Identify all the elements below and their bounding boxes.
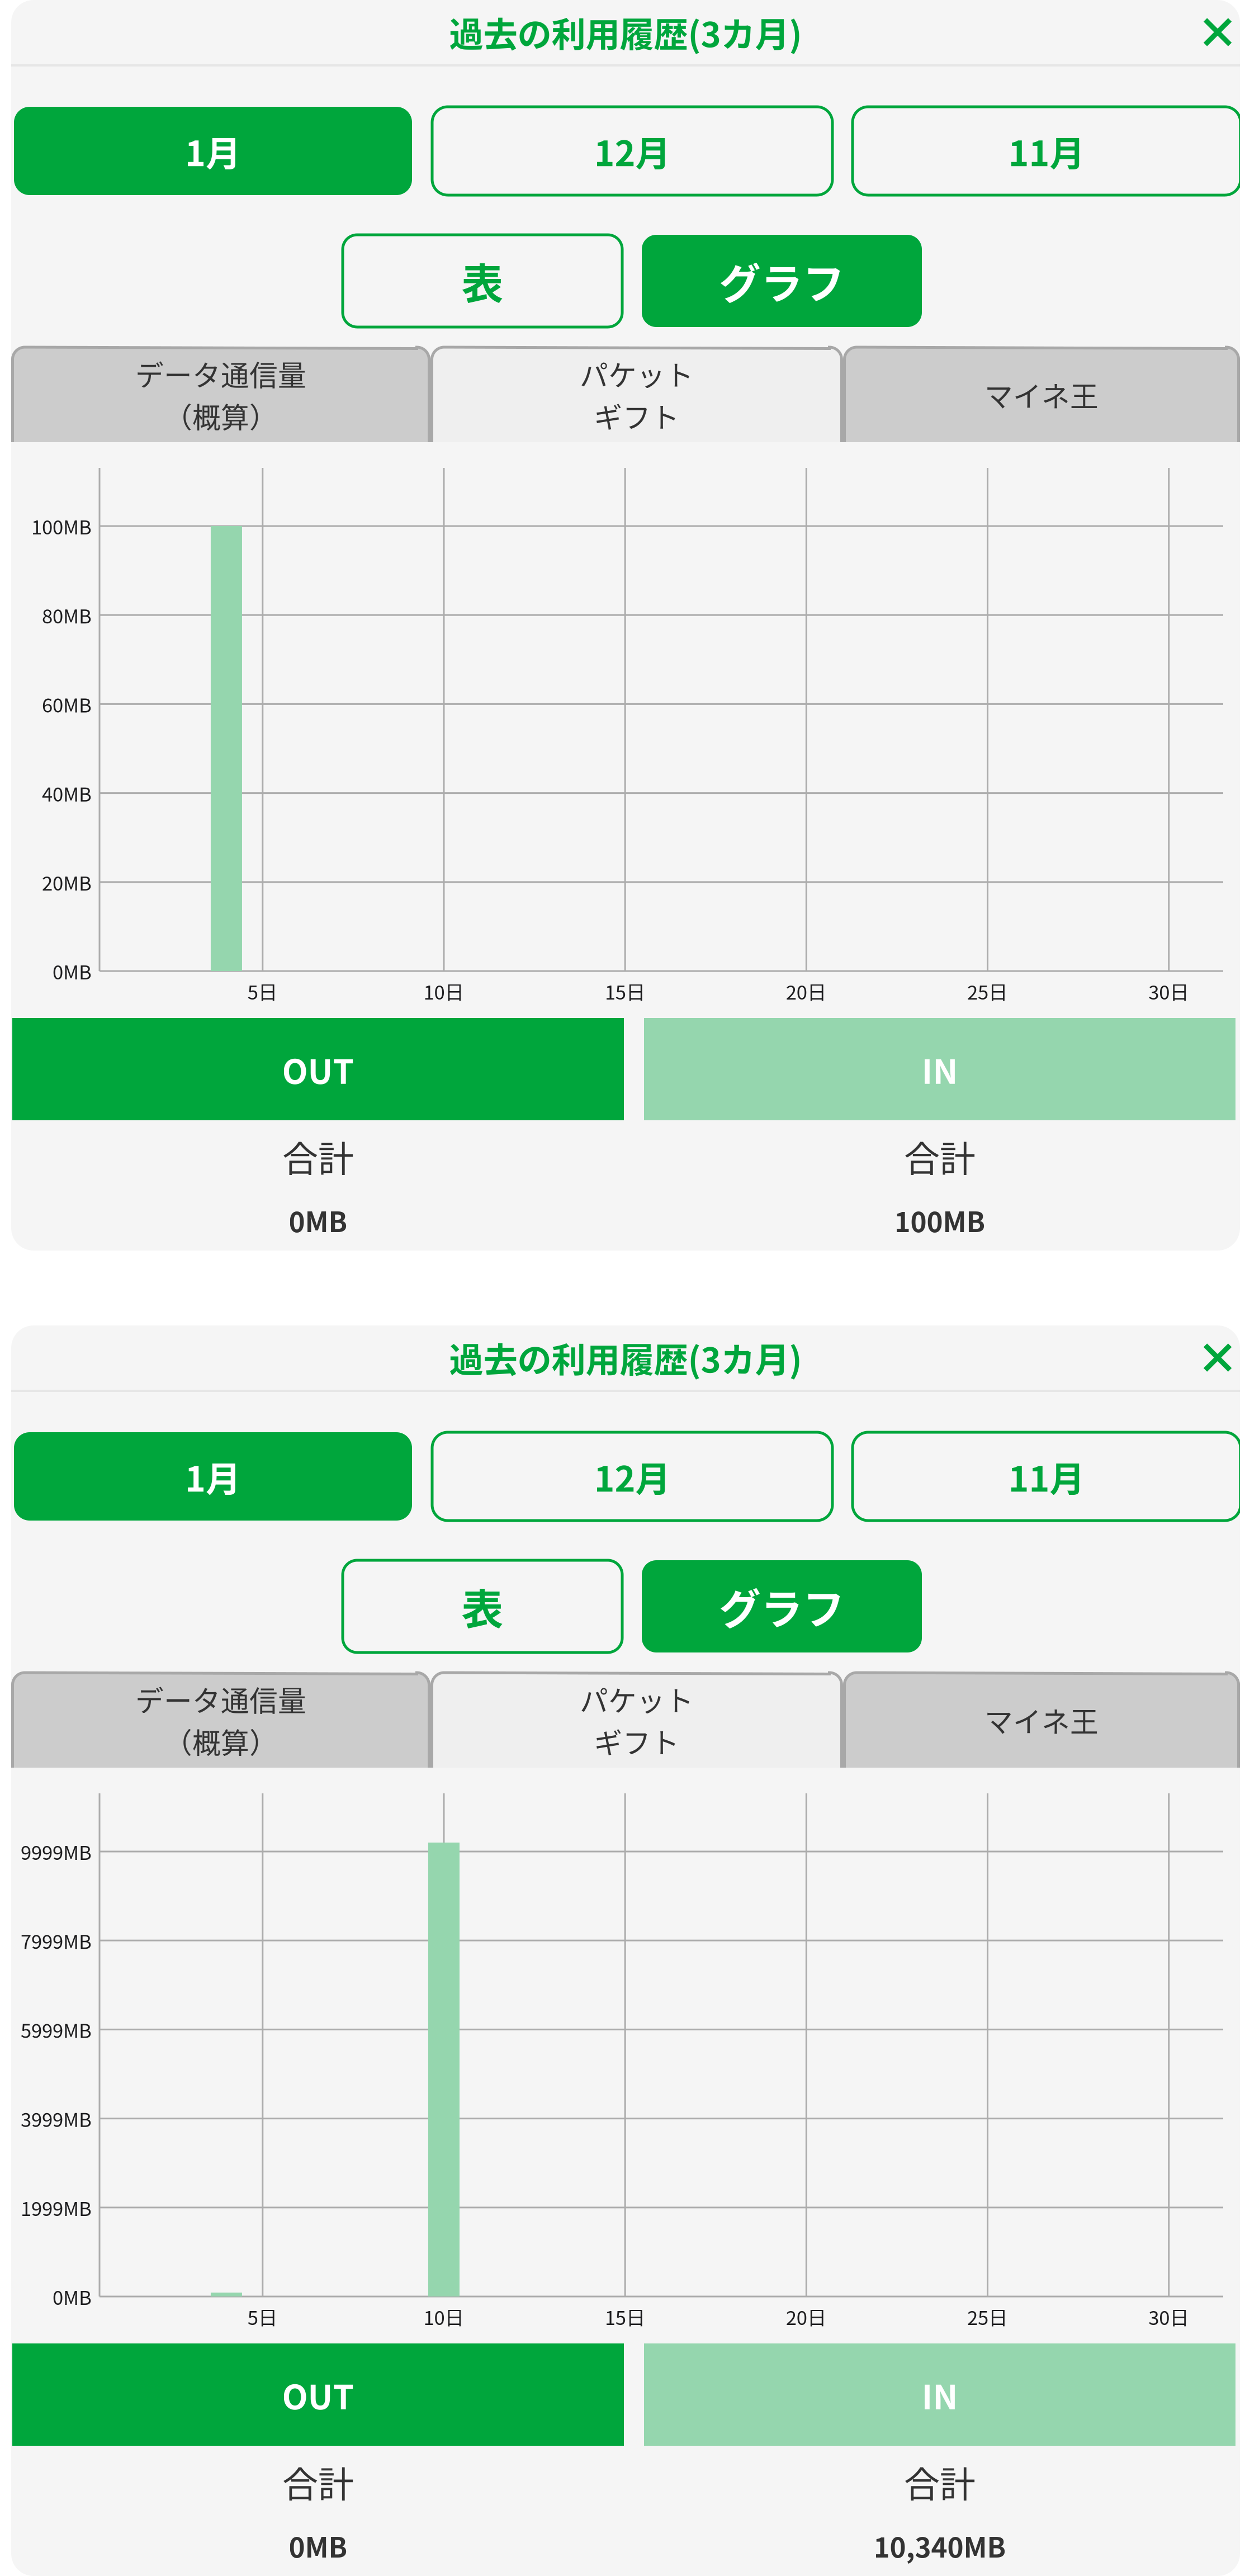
staticText: 合計 <box>282 1130 354 1182</box>
staticText: 0MB <box>53 2282 92 2311</box>
button[interactable]: マイネ王 <box>843 347 1240 442</box>
staticText: 100MB <box>31 512 92 540</box>
staticText: 20日 <box>786 977 827 1005</box>
button[interactable]: グラフ <box>642 1560 922 1652</box>
staticText: 15日 <box>605 977 646 1005</box>
button[interactable]: 11月 <box>853 1432 1241 1521</box>
staticText: 12月 <box>594 1451 671 1502</box>
staticText: 合計 <box>904 1130 976 1182</box>
staticText: 過去の利用履歴(3カ月) <box>449 7 802 57</box>
staticText: 5999MB <box>21 2015 92 2044</box>
staticText: 0MB <box>289 2526 347 2565</box>
staticText: 11月 <box>1008 1451 1085 1502</box>
staticText: 5日 <box>248 977 278 1005</box>
staticText: 11月 <box>1008 126 1085 176</box>
staticText: データ通信量 <box>135 353 306 394</box>
staticText: 0MB <box>289 1200 347 1240</box>
button[interactable]: 1月 <box>14 107 412 195</box>
button[interactable]: パケット <box>430 347 843 442</box>
button[interactable]: 12月 <box>432 1432 832 1521</box>
staticText: IN <box>922 1045 958 1093</box>
staticText: 40MB <box>42 779 92 807</box>
staticText: 80MB <box>42 601 92 629</box>
staticText: 合計 <box>282 2456 354 2508</box>
button[interactable]: データ通信量 <box>11 1673 430 1768</box>
staticText: 15日 <box>605 2303 646 2331</box>
button[interactable]: 閉じる <box>1203 18 1232 47</box>
staticText: OUT <box>282 2370 354 2419</box>
staticText: 30日 <box>1148 977 1189 1005</box>
staticText: データ通信量 <box>135 1679 306 1720</box>
staticText: 0MB <box>53 957 92 985</box>
button[interactable]: 1月 <box>14 1432 412 1521</box>
button[interactable]: パケット <box>430 1673 843 1768</box>
staticText: 10,340MB <box>874 2526 1006 2565</box>
staticText: 12月 <box>594 126 671 176</box>
staticText: マイネ王 <box>984 374 1099 415</box>
staticText: （概算） <box>164 395 278 436</box>
staticText: 7999MB <box>21 1926 92 1955</box>
staticText: 60MB <box>42 690 92 718</box>
staticText: 30日 <box>1148 2303 1189 2331</box>
staticText: 3999MB <box>21 2104 92 2133</box>
staticText: 20日 <box>786 2303 827 2331</box>
staticText: 1999MB <box>21 2193 92 2222</box>
staticText: 100MB <box>894 1200 985 1240</box>
button[interactable]: 12月 <box>432 107 832 195</box>
staticText: （概算） <box>164 1721 278 1762</box>
staticText: マイネ王 <box>984 1700 1099 1741</box>
staticText: 10日 <box>423 977 464 1005</box>
staticText: 5日 <box>248 2303 278 2331</box>
button[interactable]: グラフ <box>642 235 922 327</box>
button[interactable]: 表 <box>343 1560 622 1652</box>
staticText: ギフト <box>594 1721 680 1762</box>
button[interactable]: 表 <box>343 235 622 327</box>
staticText: パケット <box>580 1679 694 1720</box>
staticText: 25日 <box>967 2303 1008 2331</box>
staticText: 合計 <box>904 2456 976 2508</box>
staticText: IN <box>922 2370 958 2419</box>
staticText: 9999MB <box>21 1837 92 1866</box>
staticText: 1月 <box>185 1451 241 1502</box>
staticText: 過去の利用履歴(3カ月) <box>449 1333 802 1382</box>
staticText: 1月 <box>185 126 241 176</box>
staticText: 表 <box>461 1576 503 1637</box>
staticText: ギフト <box>594 395 680 436</box>
staticText: パケット <box>580 353 694 394</box>
staticText: 20MB <box>42 868 92 896</box>
button[interactable]: マイネ王 <box>843 1673 1240 1768</box>
staticText: グラフ <box>719 1576 845 1637</box>
button[interactable]: データ通信量 <box>11 347 430 442</box>
button[interactable]: 閉じる <box>1203 1343 1232 1372</box>
button[interactable]: 11月 <box>853 107 1241 195</box>
staticText: 10日 <box>423 2303 464 2331</box>
staticText: 25日 <box>967 977 1008 1005</box>
staticText: グラフ <box>719 251 845 311</box>
staticText: 表 <box>461 251 503 311</box>
staticText: OUT <box>282 1045 354 1093</box>
